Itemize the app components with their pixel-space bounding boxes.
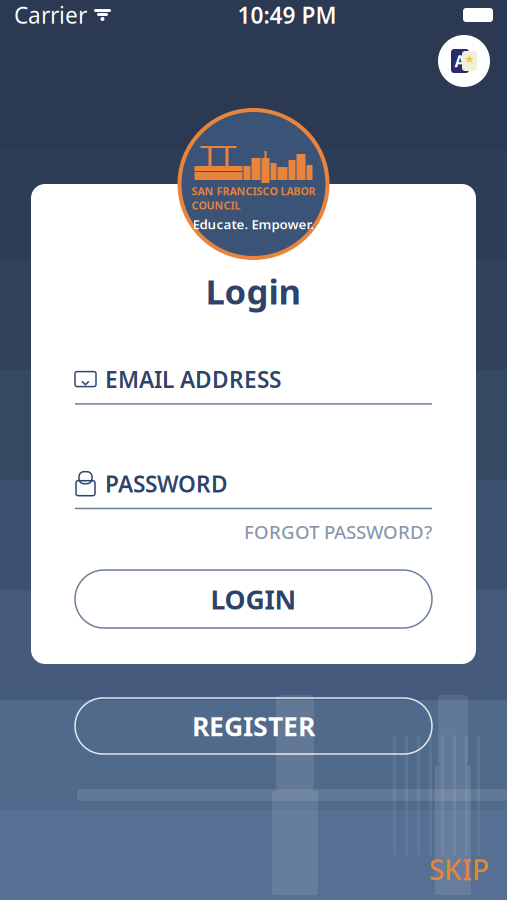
button[interactable]: REGISTER bbox=[75, 698, 432, 754]
staticText: ⌄ bbox=[77, 368, 93, 390]
button[interactable]: SKIP bbox=[429, 851, 489, 888]
staticText: PASSWORD bbox=[105, 469, 228, 499]
staticText: * bbox=[465, 51, 473, 71]
button[interactable]: Accessibility and language options bbox=[433, 30, 495, 92]
staticText: SAN FRANCISCO LABOR COUNCIL bbox=[191, 184, 315, 212]
staticText: Login bbox=[205, 268, 301, 314]
staticText: EMAIL ADDRESS bbox=[105, 364, 281, 394]
staticText: 10:49 PM bbox=[237, 0, 336, 30]
staticText: Carrier bbox=[14, 0, 87, 30]
staticText: LOGIN bbox=[210, 581, 296, 617]
button[interactable]: FORGOT PASSWORD? bbox=[244, 519, 432, 544]
staticText: REGISTER bbox=[192, 708, 315, 744]
staticText: Educate. Empower. bbox=[192, 215, 314, 233]
button[interactable]: LOGIN bbox=[75, 570, 432, 628]
staticText: SKIP bbox=[429, 851, 489, 888]
staticText: A bbox=[454, 50, 465, 72]
staticText: FORGOT PASSWORD? bbox=[244, 519, 432, 544]
